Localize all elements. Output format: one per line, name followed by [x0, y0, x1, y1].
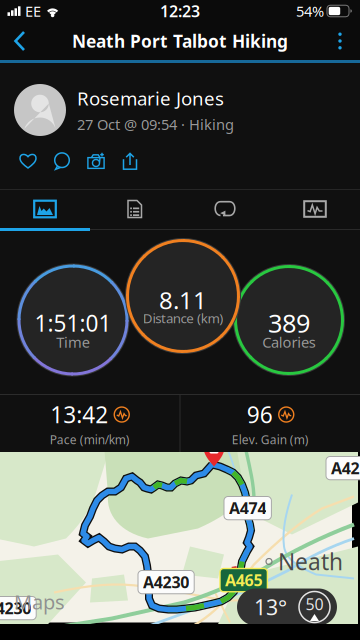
button[interactable]: Laps: [180, 190, 270, 228]
staticText: 13:42: [50, 399, 108, 430]
staticText: Maps: [14, 588, 65, 615]
staticText: EE: [25, 1, 41, 21]
staticText: Elev. Gain (m): [232, 432, 309, 447]
staticText: A474: [229, 497, 266, 519]
staticText: Calories: [262, 332, 316, 352]
button[interactable]: Details: [90, 190, 180, 228]
staticText: 12:23: [160, 0, 200, 22]
staticText: 50: [305, 593, 323, 615]
staticText: Rosemarie Jones: [77, 86, 224, 111]
staticText: 389: [268, 306, 310, 340]
staticText: 13°: [254, 593, 287, 621]
button[interactable]: Add photo: [79, 148, 113, 174]
button[interactable]: Map: [0, 190, 90, 228]
staticText: Pace (min/km): [50, 432, 130, 447]
button[interactable]: Comment: [45, 148, 79, 174]
staticText: Neath Port Talbot Hiking: [72, 29, 288, 52]
button[interactable]: Charts: [270, 190, 360, 228]
staticText: 96: [247, 399, 273, 430]
staticText: A4230: [143, 571, 189, 593]
staticText: A42: [331, 457, 360, 479]
staticText: 8.11: [159, 284, 207, 316]
staticText: Time: [56, 332, 90, 352]
staticText: 1:51:01: [34, 308, 111, 338]
button[interactable]: Share: [113, 148, 147, 174]
button[interactable]: Back: [0, 22, 40, 60]
staticText: A4230: [0, 597, 31, 619]
button[interactable]: More options: [320, 22, 360, 60]
staticText: Neath: [278, 546, 343, 577]
staticText: A465: [225, 569, 262, 591]
staticText: 27 Oct @ 09:54 · Hiking: [77, 115, 234, 134]
staticText: Distance (km): [143, 309, 223, 327]
staticText: 54%: [296, 1, 324, 21]
button[interactable]: Like: [11, 148, 45, 174]
